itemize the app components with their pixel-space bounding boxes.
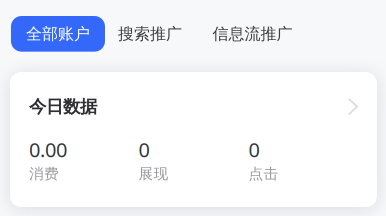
staticText: 信息流推广 [212,24,292,44]
staticText: 消费 [29,165,59,183]
staticText: 点击 [248,165,278,183]
staticText: 展现 [138,165,168,183]
button[interactable]: 今日数据 [10,72,377,117]
staticText: 搜索推广 [118,24,182,44]
staticText: 全部账户 [26,24,90,44]
button[interactable]: 信息流推广 [196,16,305,52]
staticText: 0 [248,136,259,163]
button[interactable]: 搜索推广 [105,16,196,52]
staticText: 今日数据 [29,96,97,117]
staticText: 0.00 [29,136,67,163]
staticText: 0 [138,136,149,163]
button[interactable]: 全部账户 [11,16,105,52]
